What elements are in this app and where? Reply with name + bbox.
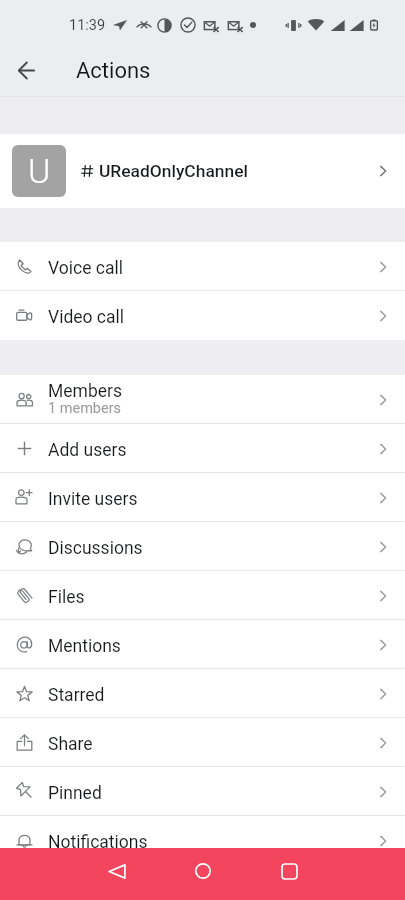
button[interactable]: U: [0, 134, 405, 208]
staticText: Invite users: [48, 489, 138, 510]
staticText: Actions: [76, 58, 151, 84]
button[interactable]: Home: [181, 849, 225, 893]
staticText: Starred: [48, 685, 105, 706]
button[interactable]: Discussions: [0, 522, 405, 571]
staticText: Add users: [48, 440, 127, 461]
staticText: 11:39: [69, 17, 106, 34]
button[interactable]: Mentions: [0, 620, 405, 669]
staticText: Video call: [48, 307, 125, 328]
button[interactable]: Members: [0, 375, 405, 424]
button[interactable]: Video call: [0, 291, 405, 340]
button[interactable]: Invite users: [0, 473, 405, 522]
button[interactable]: Notifications: [0, 816, 405, 865]
staticText: UReadOnlyChannel: [99, 161, 248, 181]
button[interactable]: Starred: [0, 669, 405, 718]
button[interactable]: Pinned: [0, 767, 405, 816]
staticText: Voice call: [48, 258, 123, 279]
staticText: 1 members: [48, 400, 122, 417]
staticText: Notifications: [48, 832, 148, 853]
staticText: Pinned: [48, 783, 102, 804]
staticText: Members: [48, 381, 122, 402]
button[interactable]: Add users: [0, 424, 405, 473]
staticText: Files: [48, 587, 85, 608]
staticText: Discussions: [48, 538, 143, 559]
button[interactable]: Share: [0, 718, 405, 767]
button[interactable]: Recent apps: [267, 849, 311, 893]
button[interactable]: Back: [95, 849, 139, 893]
button[interactable]: Files: [0, 571, 405, 620]
staticText: Share: [48, 734, 93, 755]
staticText: U: [28, 151, 51, 191]
button[interactable]: Back: [0, 45, 52, 96]
staticText: Mentions: [48, 636, 121, 657]
button[interactable]: Voice call: [0, 242, 405, 291]
